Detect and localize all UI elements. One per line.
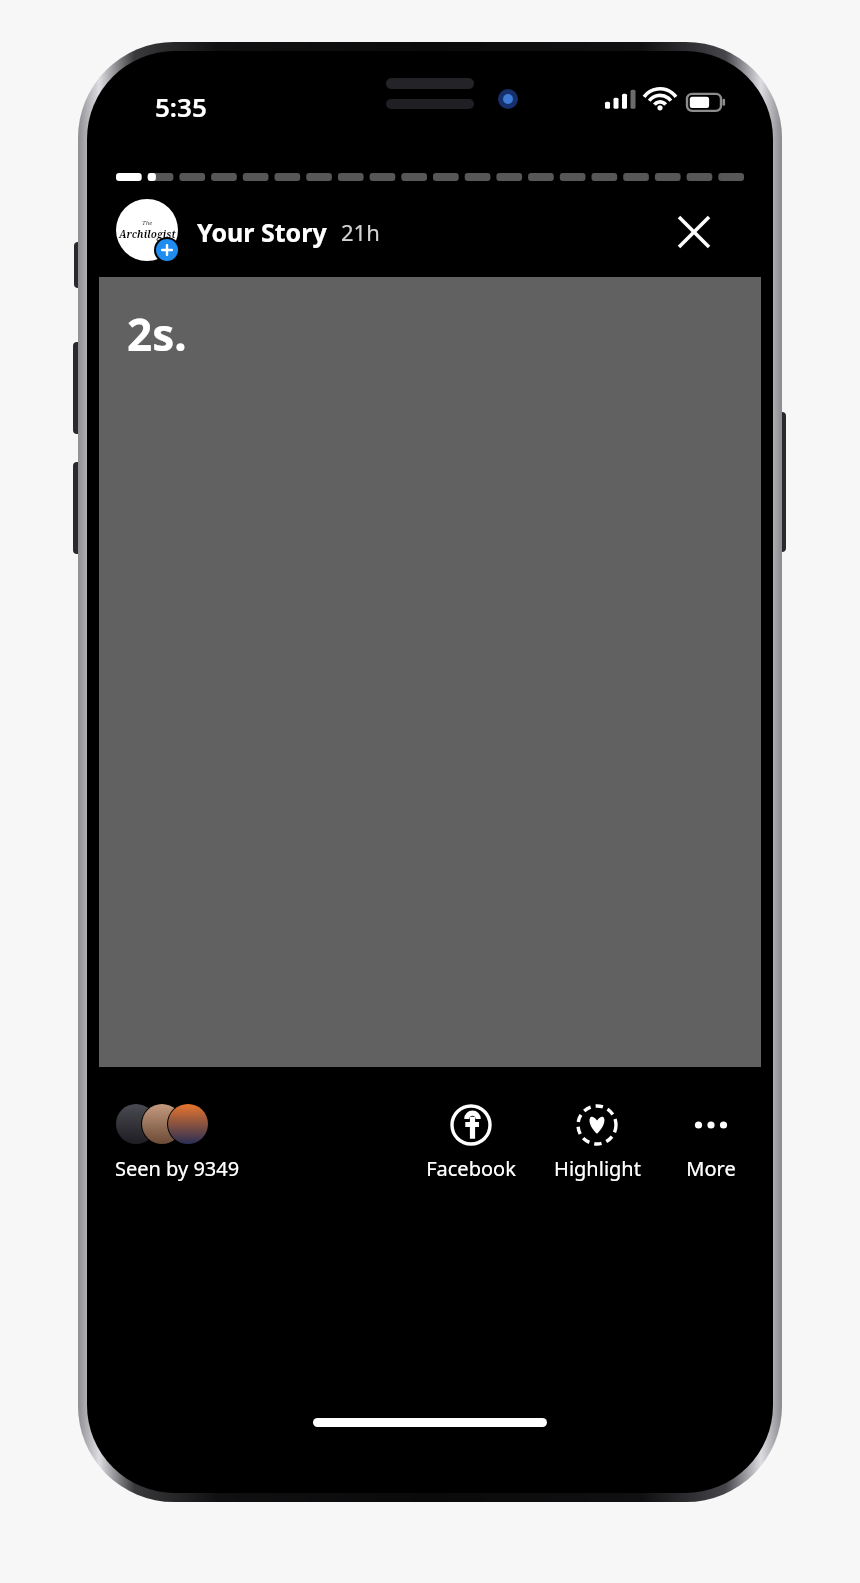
staticText: 2s.: [127, 304, 187, 364]
staticText: Highlight: [554, 1155, 641, 1182]
staticText: More: [686, 1155, 736, 1182]
button[interactable]: More options: [661, 1103, 761, 1182]
button[interactable]: Share to Facebook: [421, 1103, 521, 1182]
button[interactable]: Seen by 9349: [115, 1103, 240, 1182]
staticText: The: [142, 219, 153, 227]
staticText: Archilogist: [119, 227, 176, 241]
staticText: Your Story: [197, 215, 327, 249]
staticText: 21h: [341, 217, 380, 247]
button[interactable]: Your profile photo: [116, 199, 184, 267]
button[interactable]: Add to Highlight: [547, 1103, 647, 1182]
button[interactable]: Your Story: [197, 215, 380, 249]
button[interactable]: Close: [667, 205, 721, 259]
staticText: Facebook: [426, 1155, 516, 1182]
staticText: Seen by 9349: [115, 1155, 240, 1182]
staticText: 5:35: [155, 89, 207, 124]
